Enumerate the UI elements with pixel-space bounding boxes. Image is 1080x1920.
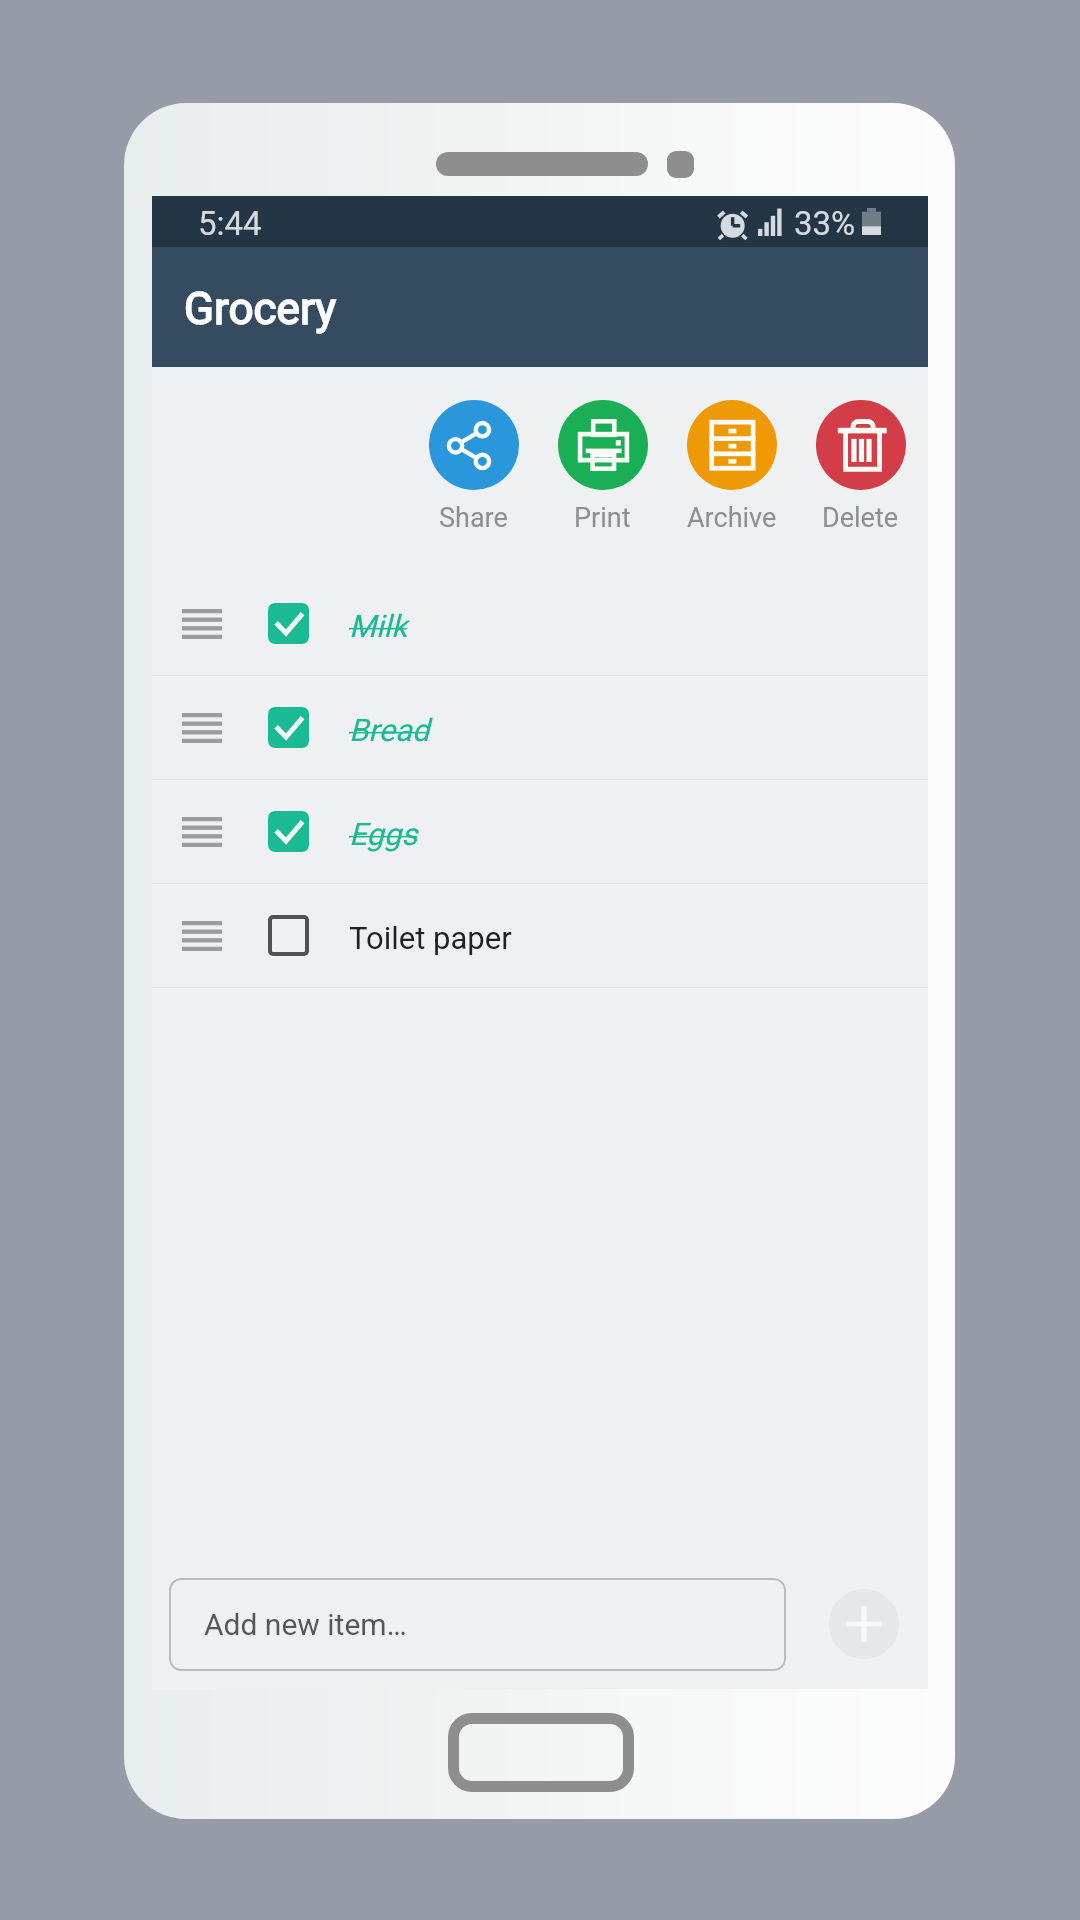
- button[interactable]: Add item: [829, 1589, 899, 1659]
- staticText: 33%: [794, 204, 856, 243]
- staticText: Bread: [349, 712, 430, 748]
- staticText: Print: [574, 502, 631, 534]
- button[interactable]: Archive: [667, 367, 796, 534]
- staticText: Toilet paper: [349, 920, 512, 956]
- button[interactable]: Share: [409, 367, 538, 534]
- staticText: 5:44: [198, 204, 262, 243]
- staticText: Add new item…: [204, 1607, 407, 1642]
- button[interactable]: Toilet paper: [152, 884, 928, 987]
- staticText: Eggs: [349, 816, 418, 852]
- button[interactable]: Print: [538, 367, 667, 534]
- button[interactable]: Delete: [796, 367, 925, 534]
- staticText: Archive: [687, 502, 777, 534]
- button[interactable]: Add new item…: [169, 1578, 786, 1671]
- staticText: Milk: [349, 608, 407, 644]
- staticText: Share: [439, 502, 508, 534]
- button[interactable]: Milk: [152, 572, 928, 675]
- button[interactable]: Bread: [152, 676, 928, 779]
- staticText: Grocery: [184, 283, 337, 335]
- button[interactable]: Eggs: [152, 780, 928, 883]
- staticText: Delete: [822, 502, 899, 534]
